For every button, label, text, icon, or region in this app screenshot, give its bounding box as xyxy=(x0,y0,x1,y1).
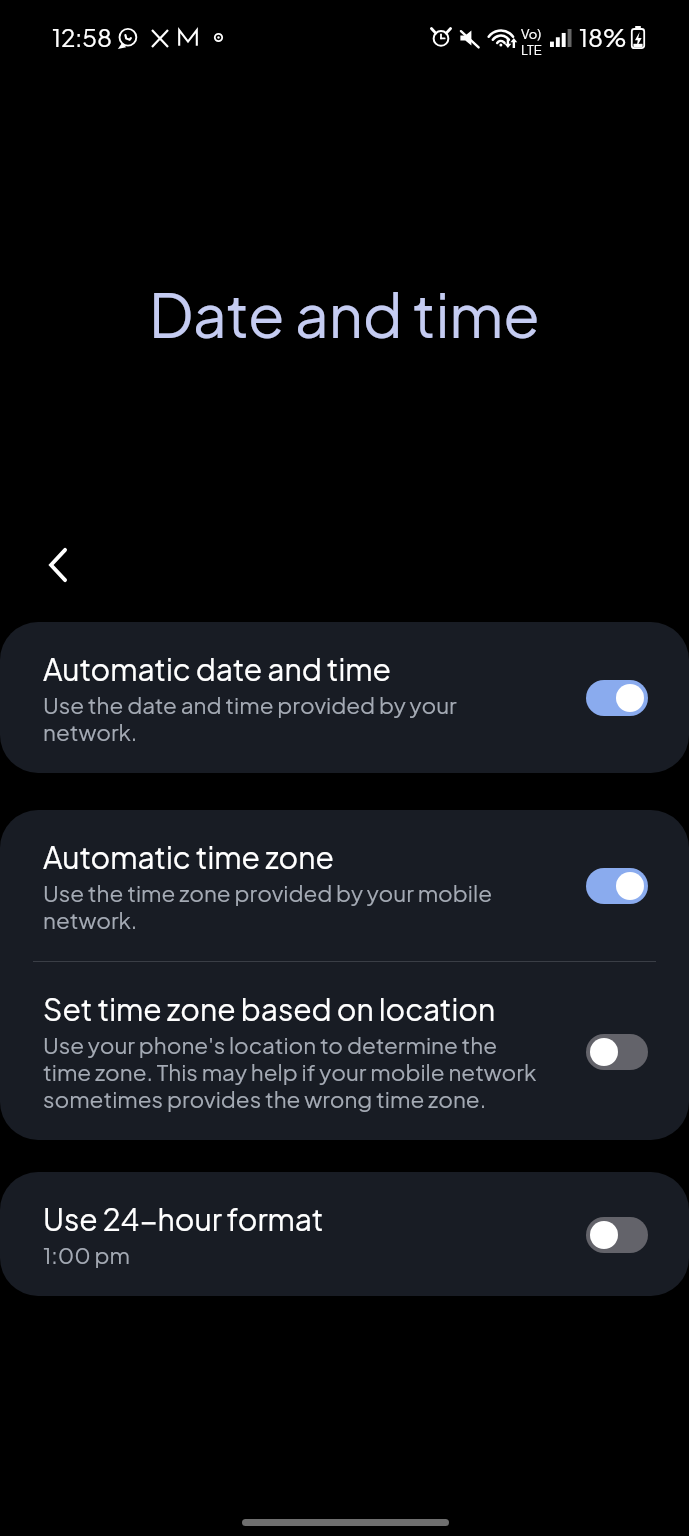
staticText: 1:00 pm xyxy=(43,1241,130,1269)
button[interactable]: Toggle on xyxy=(586,680,648,716)
staticText: Use 24-hour format xyxy=(43,1200,324,1238)
staticText: Automatic date and time xyxy=(43,650,391,688)
staticText: Automatic time zone xyxy=(43,838,334,876)
staticText: Set time zone based on location xyxy=(43,990,496,1028)
button[interactable]: Set time zone based on location xyxy=(0,962,689,1140)
button[interactable]: Navigate up xyxy=(23,531,91,599)
staticText: Use your phone's location to determine t… xyxy=(43,1031,545,1113)
staticText: Use the time zone provided by your mobil… xyxy=(43,879,545,934)
staticText: LTE xyxy=(521,42,542,58)
staticText: 18% xyxy=(579,22,627,52)
staticText: 12:58 xyxy=(52,22,113,52)
button[interactable]: Toggle off xyxy=(586,1034,648,1070)
staticText: Vo) xyxy=(521,26,542,42)
button[interactable]: Toggle off xyxy=(586,1217,648,1253)
button[interactable]: Toggle on xyxy=(586,868,648,904)
button[interactable]: Automatic time zone xyxy=(0,810,689,961)
button[interactable]: Use 24-hour format xyxy=(0,1172,689,1296)
staticText: Date and time xyxy=(0,276,689,351)
staticText: Use the date and time provided by your n… xyxy=(43,691,545,746)
button[interactable]: Automatic date and time xyxy=(0,622,689,773)
